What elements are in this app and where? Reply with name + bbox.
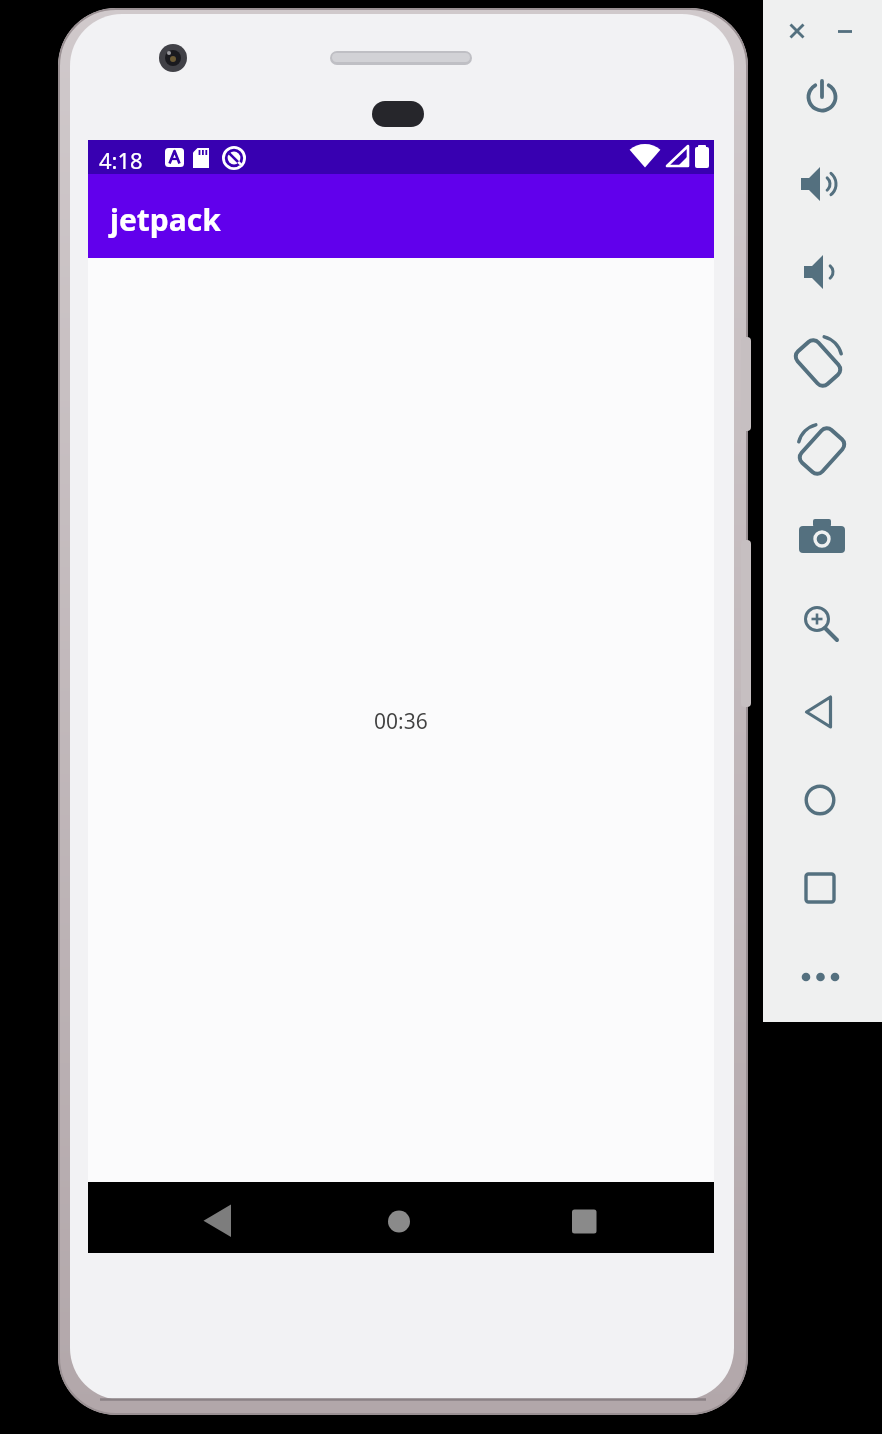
- staticText: 4:18: [99, 145, 143, 175]
- staticText: 00:36: [374, 707, 428, 736]
- staticText: jetpack: [110, 199, 221, 240]
